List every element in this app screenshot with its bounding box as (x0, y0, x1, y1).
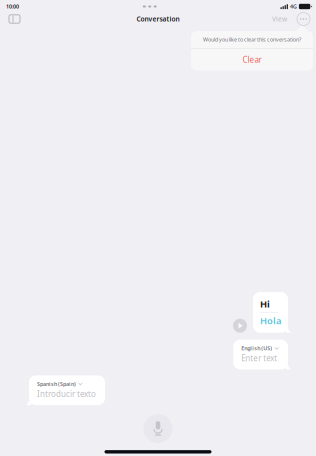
button[interactable]: More (295, 10, 312, 27)
staticText: Introducir texto (37, 388, 96, 399)
button[interactable]: Clear (191, 49, 313, 71)
staticText: Clear (242, 54, 261, 65)
staticText: 10:00 (6, 3, 19, 10)
button[interactable]: View (269, 11, 290, 27)
staticText: Hi (260, 298, 270, 310)
staticText: View (272, 15, 287, 23)
staticText: Would you like to clear this conversatio… (203, 36, 301, 43)
button[interactable]: Record (143, 414, 172, 443)
staticText: Hola (260, 314, 281, 327)
staticText: Enter text (241, 353, 277, 363)
staticText: Conversation (136, 15, 179, 23)
button[interactable]: Show Sidebar (6, 10, 23, 28)
staticText: Spanish (Spain) (37, 380, 76, 387)
staticText: English (US) (241, 345, 272, 352)
staticText: 4G (290, 3, 297, 10)
